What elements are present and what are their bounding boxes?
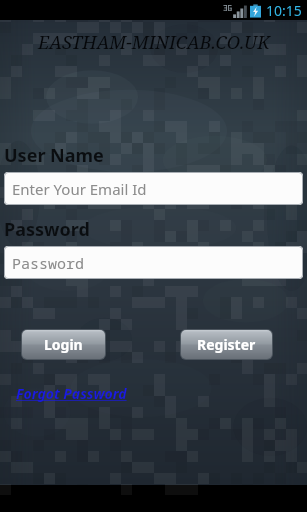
button[interactable]: Password input — [4, 246, 303, 279]
staticText: Login — [44, 335, 83, 354]
staticText: Forgot Password — [16, 384, 127, 403]
staticText: Enter Your Email Id — [12, 179, 147, 199]
staticText: Password — [12, 253, 85, 273]
button[interactable]: Forgot Password — [16, 384, 127, 403]
staticText: Register — [197, 335, 256, 354]
staticText: EASTHAM-MINICAB.CO.UK — [38, 30, 270, 55]
staticText: Password — [4, 217, 90, 242]
staticText: User Name — [4, 143, 104, 168]
button[interactable]: Register — [181, 330, 272, 359]
button[interactable]: User name input — [4, 172, 303, 205]
staticText: 10:15 — [266, 1, 302, 20]
button[interactable]: Login — [22, 330, 105, 359]
